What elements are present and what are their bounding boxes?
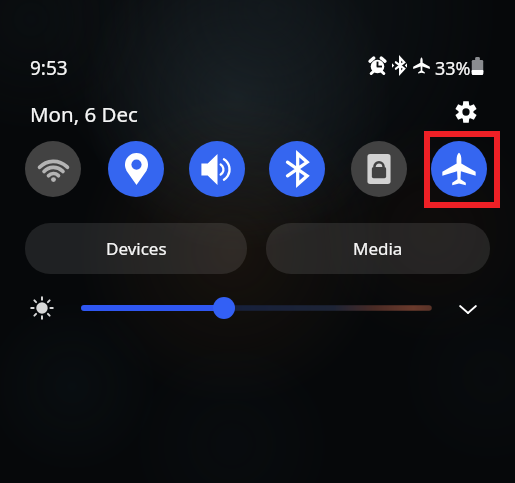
button[interactable]: Media xyxy=(266,223,490,274)
button[interactable]: Toggle xyxy=(108,141,164,197)
button[interactable]: Toggle xyxy=(351,141,407,197)
button[interactable]: Expand quick settings xyxy=(454,295,482,323)
button[interactable]: Toggle xyxy=(269,141,325,197)
button[interactable]: Toggle xyxy=(431,141,487,197)
staticText: 9:53 xyxy=(30,55,68,81)
staticText: Devices xyxy=(106,237,167,260)
staticText: 33% xyxy=(435,56,471,81)
button[interactable]: Toggle xyxy=(189,141,245,197)
button[interactable]: Toggle xyxy=(25,141,81,197)
button[interactable]: Devices xyxy=(25,223,247,274)
button[interactable]: Settings xyxy=(450,96,482,128)
staticText: Media xyxy=(353,237,403,260)
staticText: Mon, 6 Dec xyxy=(30,100,138,128)
